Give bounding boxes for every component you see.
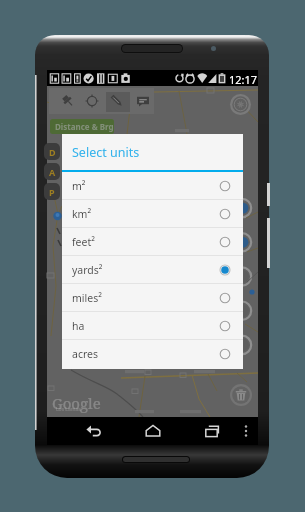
staticText: km²	[72, 207, 92, 221]
button[interactable]: Compass	[230, 94, 251, 115]
button[interactable]: Recents	[200, 419, 224, 443]
staticText: Los Lamas	[56, 406, 81, 413]
button[interactable]: feet²	[62, 228, 243, 256]
staticText: Google	[52, 393, 101, 413]
button[interactable]: yards²	[62, 256, 243, 284]
button[interactable]: acres	[62, 340, 243, 368]
button[interactable]: P	[44, 183, 60, 200]
button[interactable]: Home	[141, 419, 165, 443]
staticText: acres	[72, 347, 99, 361]
button[interactable]: Measure	[81, 90, 103, 112]
staticText: feet²	[72, 235, 95, 249]
staticText: A	[49, 166, 56, 178]
staticText: P	[49, 186, 55, 198]
staticText: Select units	[72, 144, 140, 161]
button[interactable]: Draw	[106, 92, 130, 112]
button[interactable]: A	[44, 163, 60, 180]
button[interactable]: Delete	[230, 384, 252, 406]
button[interactable]: More options	[234, 419, 258, 443]
staticText: 12:17	[229, 72, 258, 87]
staticText: miles²	[72, 291, 102, 305]
staticText: yards²	[72, 263, 103, 277]
button[interactable]: miles²	[62, 284, 243, 312]
button[interactable]: m²	[62, 172, 243, 200]
button[interactable]: Note	[132, 90, 154, 112]
button[interactable]: km²	[62, 200, 243, 228]
button[interactable]: Pin	[57, 90, 79, 112]
staticText: D	[49, 146, 56, 158]
button[interactable]: Distance & Brg	[50, 119, 114, 134]
staticText: Distance & Brg	[55, 121, 114, 132]
staticText: m²	[72, 179, 86, 193]
button[interactable]: Draw	[106, 90, 128, 112]
button[interactable]: ha	[62, 312, 243, 340]
button[interactable]: D	[44, 143, 60, 160]
button[interactable]: Back	[82, 419, 106, 443]
staticText: ha	[72, 319, 85, 333]
